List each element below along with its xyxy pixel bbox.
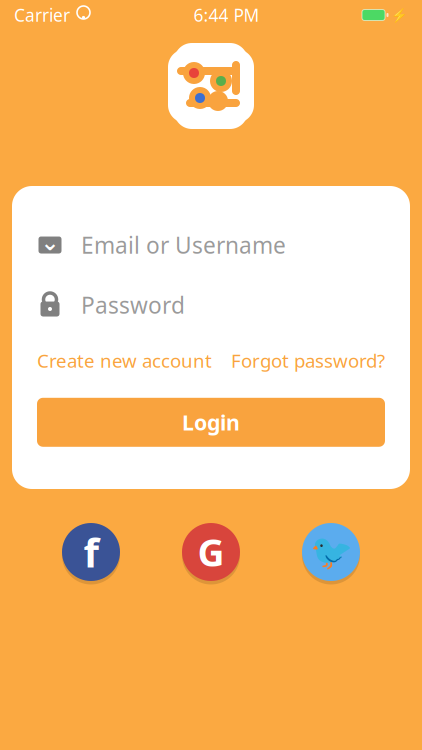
staticText: 🐦 (309, 532, 352, 572)
button[interactable]: Sign in with Google (178, 518, 244, 586)
button[interactable]: Create new account (37, 348, 212, 373)
staticText: Forgot password? (231, 348, 385, 373)
staticText: f (83, 525, 98, 578)
staticText: Carrier (14, 3, 70, 26)
staticText: 6:44 PM (193, 3, 259, 26)
staticText: Email or Username (81, 230, 286, 260)
staticText: Create new account (37, 348, 212, 373)
button[interactable]: Login (37, 398, 385, 447)
staticText: G (197, 527, 224, 577)
button[interactable]: Sign in with Twitter (298, 518, 364, 586)
staticText: ⚡ (391, 7, 408, 23)
staticText: ⌄ (40, 230, 59, 255)
button[interactable]: Forgot password? (231, 348, 385, 373)
staticText: Password (81, 290, 185, 320)
button[interactable]: Sign in with Facebook (58, 518, 124, 586)
staticText: Login (182, 408, 240, 436)
